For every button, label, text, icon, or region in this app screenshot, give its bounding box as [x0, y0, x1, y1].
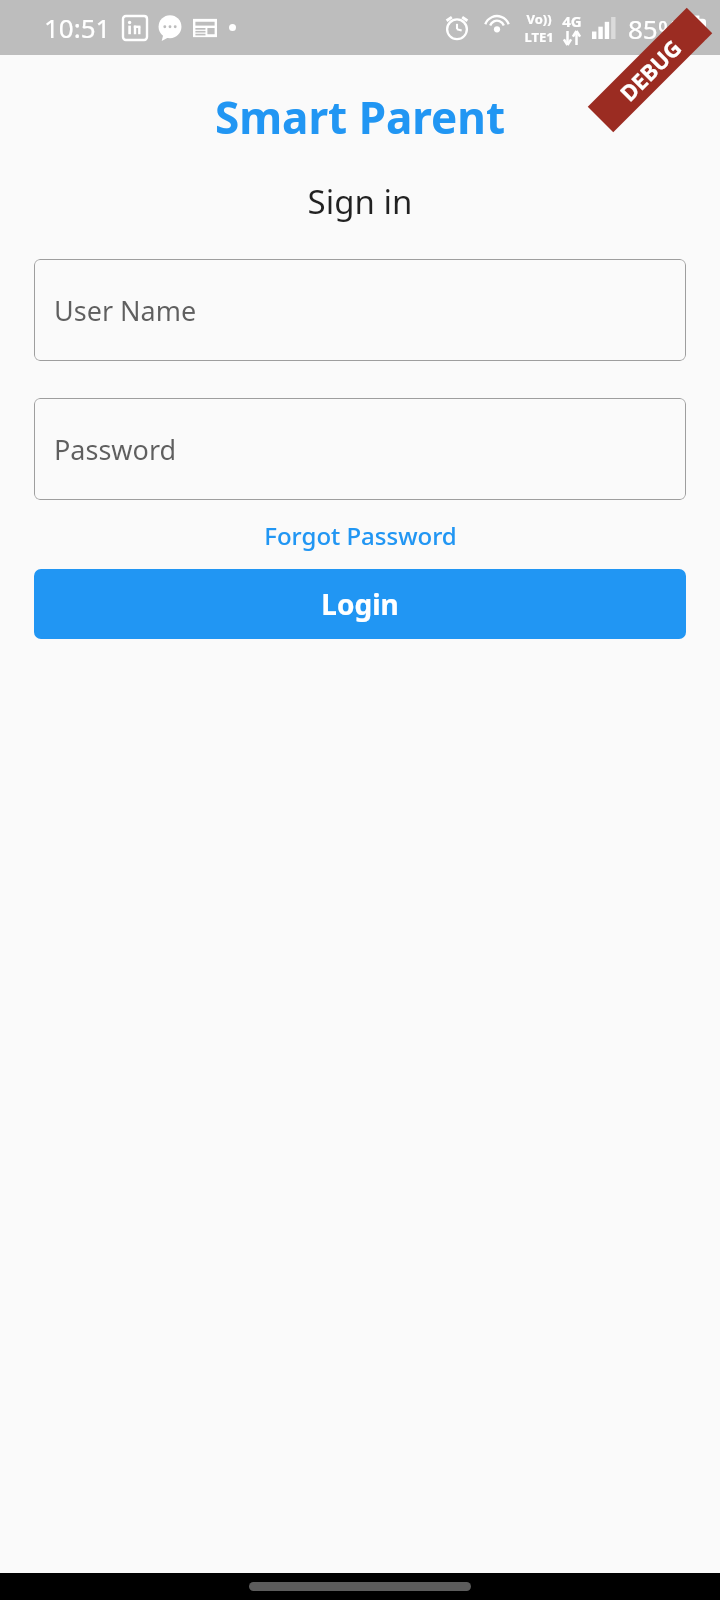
staticText: Vo)) — [526, 10, 552, 28]
staticText: User Name — [54, 292, 197, 329]
staticText: 4G — [562, 11, 582, 31]
staticText: Password — [54, 431, 177, 468]
staticText: 85% — [628, 11, 680, 46]
staticText: Forgot Password — [264, 519, 457, 552]
staticText: 10:51 — [44, 10, 111, 45]
staticText: Smart Parent — [0, 87, 720, 147]
button[interactable]: Password — [34, 398, 686, 500]
button[interactable]: Forgot Password — [0, 513, 720, 558]
button[interactable]: Login — [34, 569, 686, 639]
button[interactable]: User Name — [34, 259, 686, 361]
staticText: Sign in — [0, 179, 720, 224]
staticText: Login — [321, 585, 399, 623]
other: Debug banner — [580, 0, 720, 140]
staticText: DEBUG — [612, 32, 687, 107]
staticText: LTE1 — [524, 28, 554, 46]
